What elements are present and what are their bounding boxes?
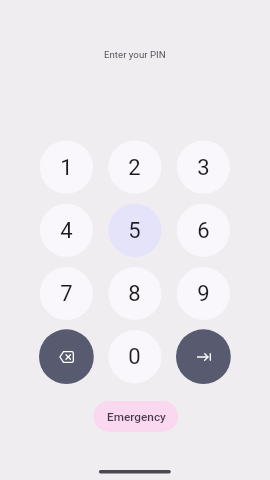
staticText: 6 xyxy=(197,218,210,244)
staticText: 0 xyxy=(128,344,141,370)
staticText: 1 xyxy=(60,155,73,181)
staticText: 5 xyxy=(128,218,141,244)
button[interactable]: Emergency xyxy=(94,401,179,432)
button[interactable]: 6 xyxy=(177,204,230,257)
staticText: 3 xyxy=(197,155,210,181)
button[interactable]: 1 xyxy=(40,141,93,194)
staticText: 8 xyxy=(128,281,141,307)
button[interactable]: 3 xyxy=(177,141,230,194)
button[interactable]: Enter xyxy=(176,329,231,384)
button[interactable]: 7 xyxy=(40,267,93,320)
button[interactable]: 9 xyxy=(177,267,230,320)
button[interactable]: Backspace xyxy=(39,329,94,384)
staticText: 4 xyxy=(60,218,73,244)
button[interactable]: 8 xyxy=(108,267,161,320)
staticText: 2 xyxy=(128,155,141,181)
staticText: 9 xyxy=(197,281,210,307)
button[interactable]: 2 xyxy=(108,141,161,194)
button[interactable]: 4 xyxy=(40,204,93,257)
staticText: Emergency xyxy=(107,410,166,424)
staticText: 7 xyxy=(60,281,73,307)
button[interactable]: 0 xyxy=(108,330,161,383)
staticText: Enter your PIN xyxy=(104,49,166,60)
button[interactable]: 5 xyxy=(108,204,161,257)
